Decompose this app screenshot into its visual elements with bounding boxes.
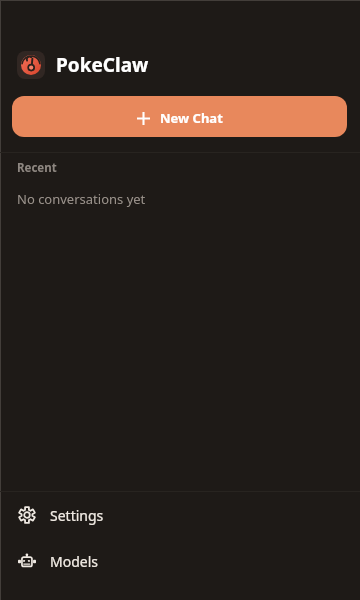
other: Settings xyxy=(18,506,36,524)
staticText: Models xyxy=(50,552,98,571)
staticText: New Chat xyxy=(160,109,223,127)
staticText: No conversations yet xyxy=(17,190,146,208)
button[interactable]: New Chat xyxy=(12,96,347,137)
button[interactable]: Models xyxy=(0,538,360,584)
staticText: Recent xyxy=(17,160,57,176)
staticText: Settings xyxy=(50,506,104,525)
other: Models xyxy=(18,552,36,570)
button[interactable]: Settings xyxy=(0,492,360,538)
staticText: PokeClaw xyxy=(56,52,149,78)
